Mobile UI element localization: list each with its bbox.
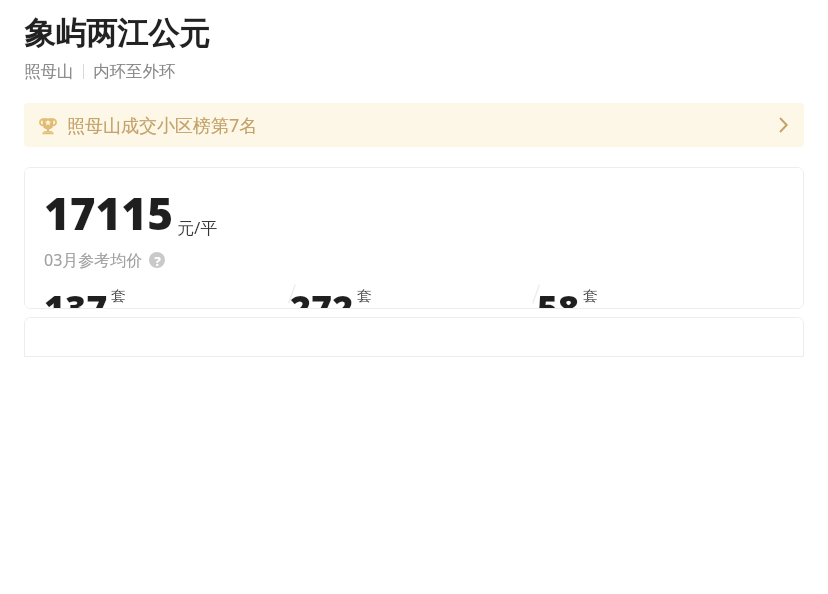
- staticText: 137: [44, 283, 108, 309]
- button[interactable]: 58: [537, 283, 784, 309]
- staticText: 象屿两江公元: [24, 14, 210, 53]
- button[interactable]: More details: [24, 317, 804, 357]
- staticText: 272: [290, 283, 354, 309]
- staticText: 套: [583, 287, 598, 306]
- staticText: 照母山: [24, 61, 74, 82]
- staticText: 照母山成交小区榜第7名: [67, 113, 258, 138]
- staticText: 03月参考均价: [44, 249, 143, 271]
- staticText: 元/平: [177, 216, 218, 239]
- staticText: 套: [357, 287, 372, 306]
- button[interactable]: 照母山成交小区榜第7名: [24, 103, 804, 147]
- staticText: 17115: [44, 183, 173, 243]
- button[interactable]: 272: [290, 283, 537, 309]
- staticText: ?: [154, 252, 161, 268]
- staticText: 58: [537, 283, 580, 309]
- button[interactable]: 03月参考均价: [44, 249, 165, 271]
- button[interactable]: 137: [44, 283, 290, 309]
- staticText: 套: [111, 287, 126, 306]
- staticText: 内环至外环: [93, 61, 176, 82]
